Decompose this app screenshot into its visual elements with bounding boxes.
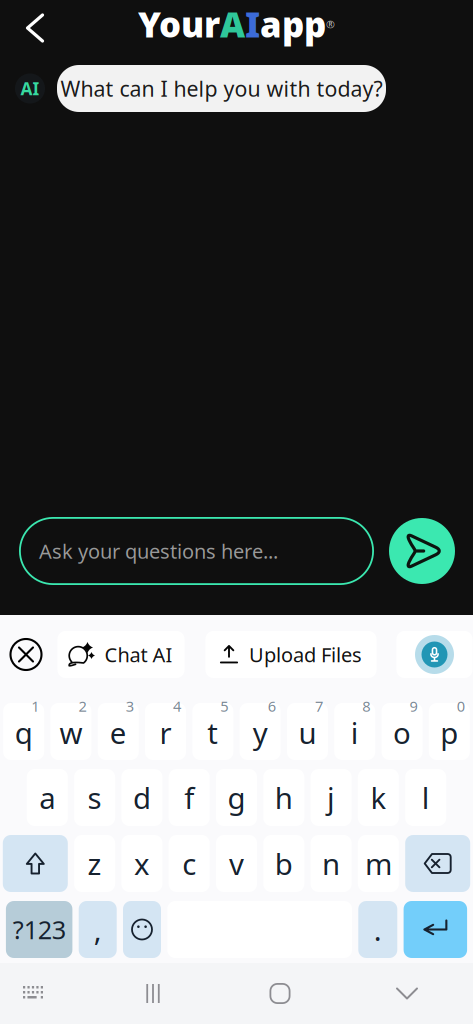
staticText: u	[298, 713, 316, 752]
button[interactable]: d	[121, 769, 162, 826]
staticText: i	[351, 713, 359, 752]
button[interactable]: Close	[9, 631, 42, 678]
staticText: AI	[20, 77, 39, 100]
staticText: x	[134, 844, 150, 883]
staticText: 7	[315, 696, 323, 716]
button[interactable]: Switch keyboard	[10, 970, 56, 1016]
staticText: ®	[326, 17, 335, 31]
staticText: .	[374, 910, 382, 949]
button[interactable]: Back	[377, 970, 437, 1016]
button[interactable]: Voice input	[396, 631, 472, 678]
button[interactable]: f	[169, 769, 210, 826]
staticText: f	[184, 778, 194, 817]
button[interactable]: h	[263, 769, 304, 826]
staticText: ,	[94, 910, 102, 949]
staticText: y	[253, 713, 268, 752]
button[interactable]: c	[169, 835, 210, 892]
button[interactable]: v	[216, 835, 257, 892]
staticText: s	[88, 778, 102, 817]
staticText: b	[275, 844, 293, 883]
staticText: 6	[268, 696, 276, 716]
staticText: r	[159, 713, 171, 752]
button[interactable]: 5	[192, 703, 233, 760]
staticText: w	[59, 713, 82, 752]
staticText: o	[393, 713, 411, 752]
button[interactable]: m	[358, 835, 399, 892]
button[interactable]: Upload Files	[205, 631, 376, 678]
staticText: c	[182, 844, 196, 883]
button[interactable]: Emoji	[123, 901, 161, 958]
button[interactable]: Home	[250, 970, 310, 1016]
staticText: 4	[173, 696, 181, 716]
staticText: k	[370, 778, 386, 817]
staticText: Upload Files	[249, 641, 362, 668]
staticText: z	[88, 844, 102, 883]
staticText: Your	[138, 1, 220, 47]
staticText: A	[220, 1, 245, 47]
button[interactable]: Backspace	[405, 835, 470, 892]
button[interactable]: s	[74, 769, 115, 826]
staticText: Chat AI	[104, 641, 172, 668]
button[interactable]: k	[358, 769, 399, 826]
staticText: 9	[410, 696, 418, 716]
staticText: v	[229, 844, 244, 883]
button[interactable]: g	[216, 769, 257, 826]
staticText: What can I help you with today?	[60, 74, 382, 103]
staticText: 2	[78, 696, 86, 716]
button[interactable]: b	[263, 835, 304, 892]
button[interactable]: Back	[6, 0, 64, 56]
button[interactable]: 4	[145, 703, 186, 760]
button[interactable]: 8	[334, 703, 375, 760]
staticText: d	[133, 778, 151, 817]
staticText: app	[260, 1, 326, 47]
staticText: 1	[31, 696, 39, 716]
staticText: 8	[362, 696, 370, 716]
button[interactable]: 0	[429, 703, 470, 760]
button[interactable]: z	[74, 835, 115, 892]
staticText: e	[110, 713, 127, 752]
staticText: 0	[457, 696, 465, 716]
staticText: h	[275, 778, 293, 817]
staticText: t	[207, 713, 218, 752]
button[interactable]: 6	[240, 703, 281, 760]
staticText: 5	[220, 696, 228, 716]
staticText: l	[422, 778, 430, 817]
button[interactable]: 7	[287, 703, 328, 760]
staticText: a	[39, 778, 55, 817]
button[interactable]: 1	[3, 703, 44, 760]
button[interactable]: Send	[389, 518, 455, 584]
button[interactable]: ?123	[6, 901, 72, 958]
button[interactable]: l	[405, 769, 446, 826]
button[interactable]: Chat AI	[57, 631, 184, 678]
button[interactable]: j	[311, 769, 352, 826]
staticText: Ask your questions here...	[39, 538, 278, 564]
staticText: ?123	[13, 913, 66, 946]
button[interactable]: Ask your questions here...	[19, 517, 374, 585]
button[interactable]: .	[358, 901, 397, 958]
staticText: g	[227, 778, 245, 817]
staticText: p	[440, 713, 458, 752]
staticText: j	[327, 778, 335, 817]
button[interactable]: Enter	[404, 901, 467, 958]
button[interactable]: 3	[98, 703, 139, 760]
button[interactable]: 2	[50, 703, 91, 760]
staticText: n	[322, 844, 340, 883]
button[interactable]: n	[311, 835, 352, 892]
staticText: 3	[126, 696, 134, 716]
staticText: q	[15, 713, 33, 752]
button[interactable]: ,	[79, 901, 117, 958]
staticText: I	[245, 1, 260, 47]
button[interactable]: x	[121, 835, 162, 892]
button[interactable]: 9	[382, 703, 423, 760]
staticText: m	[365, 844, 392, 883]
button[interactable]: Recents	[123, 970, 183, 1016]
button[interactable]: a	[27, 769, 68, 826]
button[interactable]: Shift	[3, 835, 68, 892]
